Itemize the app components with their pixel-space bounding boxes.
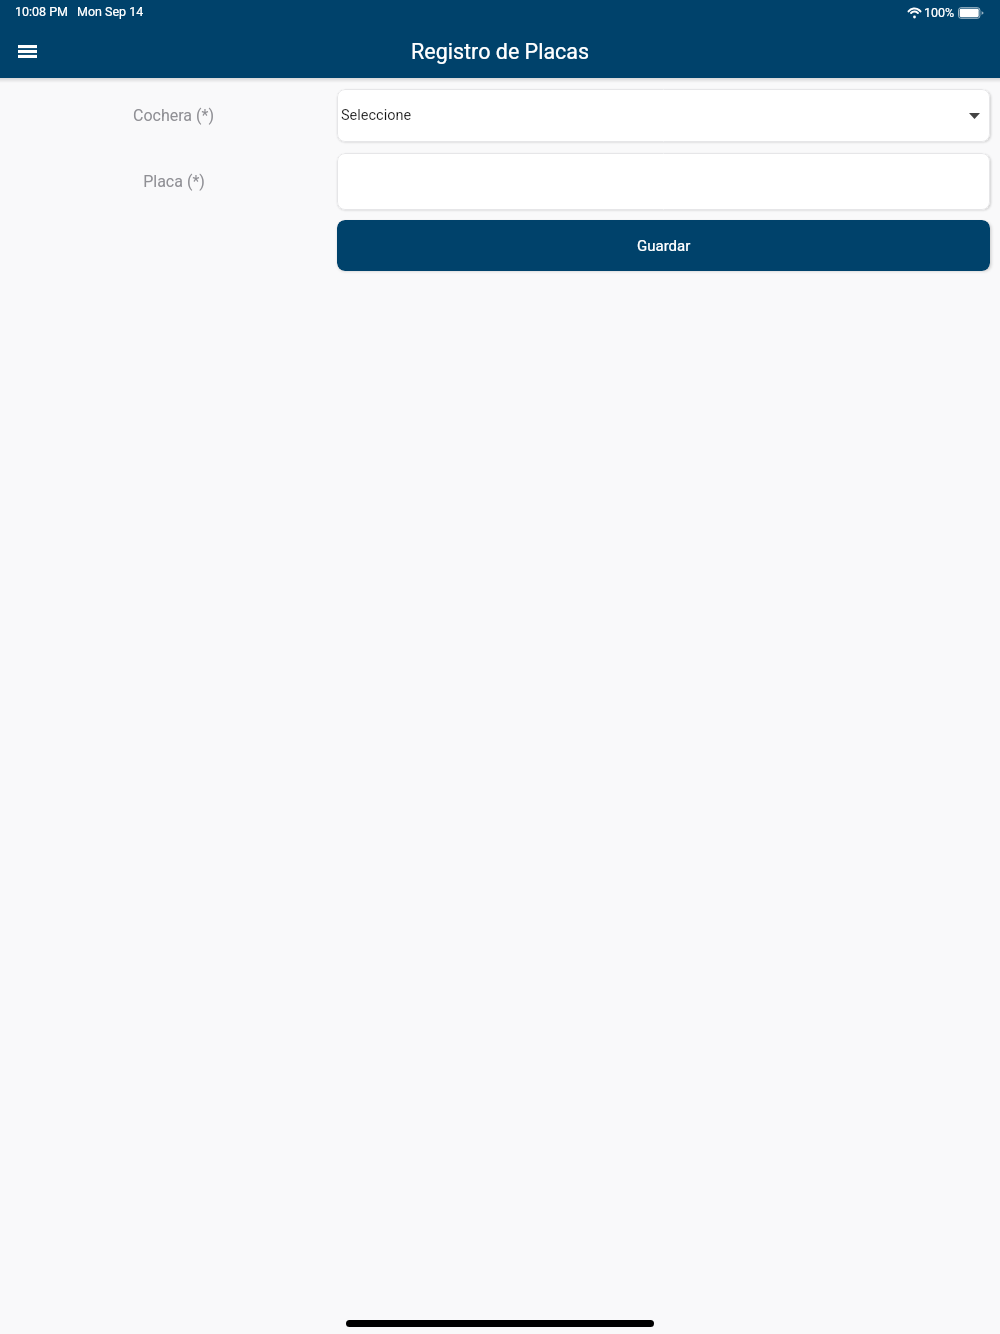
staticText: Seleccione — [341, 107, 412, 124]
staticText: Mon Sep 14 — [77, 4, 144, 19]
staticText: Cochera (*) — [133, 106, 214, 125]
button[interactable]: Open navigation menu — [7, 32, 47, 72]
button[interactable]: Cochera selector — [337, 89, 990, 142]
staticText: 100% — [924, 5, 955, 20]
button[interactable]: Guardar — [337, 220, 990, 271]
staticText: Guardar — [637, 237, 691, 255]
staticText: 10:08 PM — [15, 4, 69, 19]
staticText: Placa (*) — [143, 172, 205, 191]
button[interactable]: Placa text field — [337, 153, 990, 210]
other: Battery full — [958, 7, 984, 19]
staticText: Registro de Placas — [411, 39, 590, 64]
other: Wi-Fi connected — [907, 7, 922, 18]
